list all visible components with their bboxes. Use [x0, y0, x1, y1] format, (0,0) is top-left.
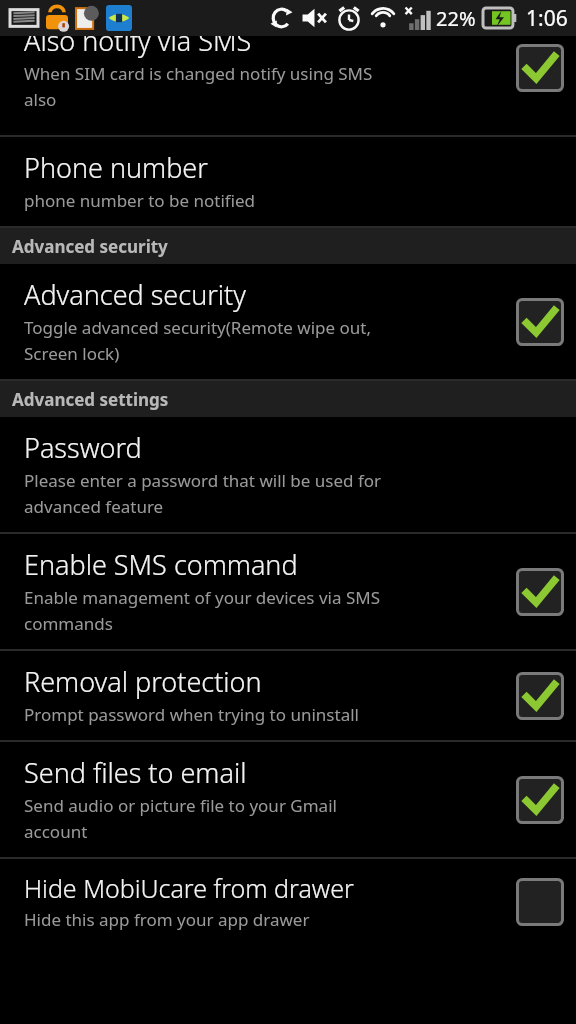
button[interactable]: Disabled [516, 878, 564, 926]
button[interactable]: Password [0, 417, 576, 532]
button[interactable]: Send files to email [0, 742, 576, 857]
staticText: Enable SMS command [24, 546, 298, 583]
staticText: Please enter a password that will be use… [24, 469, 382, 518]
staticText: Prompt password when trying to uninstall [24, 703, 359, 726]
staticText: Toggle advanced security(Remote wipe out… [24, 316, 372, 365]
staticText: Advanced security [12, 235, 168, 258]
button[interactable]: Also notify via SMS [0, 36, 576, 135]
button[interactable]: Enabled [516, 776, 564, 824]
staticText: Removal protection [24, 663, 262, 700]
staticText: Enable management of your devices via SM… [24, 586, 380, 635]
button[interactable]: Enabled [516, 298, 564, 346]
staticText: Hide MobiUcare from drawer [24, 871, 354, 905]
staticText: 1:06 [526, 4, 568, 33]
staticText: phone number to be notified [24, 189, 256, 212]
button[interactable]: Enabled [516, 672, 564, 720]
staticText: Hide this app from your app drawer [24, 908, 310, 931]
staticText: Also notify via SMS [24, 36, 252, 59]
button[interactable]: Phone number [0, 137, 576, 226]
staticText: Advanced settings [12, 388, 169, 411]
button[interactable]: Enabled [516, 44, 564, 92]
button[interactable]: Hide MobiUcare from drawer [0, 859, 576, 945]
button[interactable]: Enable SMS command [0, 534, 576, 649]
staticText: Password [24, 429, 142, 466]
button[interactable]: Advanced security [0, 264, 576, 379]
staticText: 22% [436, 5, 476, 32]
button[interactable]: Enabled [516, 568, 564, 616]
staticText: When SIM card is changed notify using SM… [24, 62, 373, 111]
staticText: Phone number [24, 149, 208, 186]
staticText: Send files to email [24, 754, 247, 791]
button[interactable]: Removal protection [0, 651, 576, 740]
staticText: Advanced security [24, 276, 246, 313]
staticText: Send audio or picture file to your Gmail… [24, 794, 337, 843]
